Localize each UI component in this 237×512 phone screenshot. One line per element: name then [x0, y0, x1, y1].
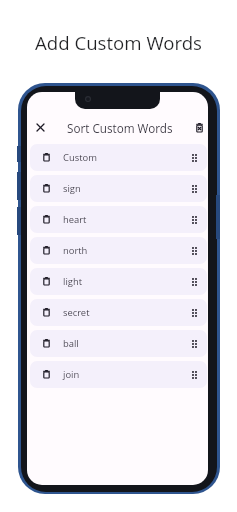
staticText: Add Custom Words	[0, 30, 237, 55]
button[interactable]: sign	[30, 175, 207, 202]
staticText: ball	[63, 337, 79, 350]
staticText: secret	[63, 306, 90, 319]
button[interactable]: light	[30, 268, 207, 295]
button[interactable]: heart	[30, 206, 207, 233]
button[interactable]: join	[30, 361, 207, 388]
staticText: north	[63, 244, 88, 257]
button[interactable]: ball	[30, 330, 207, 357]
staticText: Sort Custom Words	[67, 120, 173, 136]
staticText: light	[63, 275, 82, 288]
staticText: join	[63, 368, 80, 381]
button[interactable]: north	[30, 237, 207, 264]
staticText: Custom	[63, 151, 97, 164]
staticText: sign	[63, 182, 81, 195]
button[interactable]: Custom	[30, 144, 207, 171]
button[interactable]: Delete all custom words	[190, 118, 208, 136]
staticText: heart	[63, 213, 87, 226]
button[interactable]: secret	[30, 299, 207, 326]
button[interactable]: Close	[31, 118, 49, 136]
